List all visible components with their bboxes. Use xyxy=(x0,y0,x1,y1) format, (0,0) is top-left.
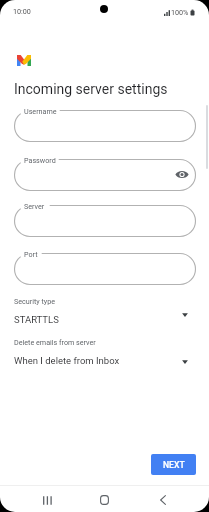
staticText: Security type xyxy=(14,297,56,305)
button[interactable]: Delete emails from server xyxy=(14,338,196,368)
staticText: 10:00 xyxy=(13,7,31,15)
button[interactable]: Show password xyxy=(173,165,191,183)
staticText: Server xyxy=(24,202,45,210)
staticText: Incoming server settings xyxy=(14,81,168,97)
staticText: Username xyxy=(24,107,57,115)
staticText: Port xyxy=(24,250,38,258)
staticText: 100% xyxy=(171,8,189,16)
staticText: STARTTLS xyxy=(14,314,59,325)
button[interactable]: NEXT xyxy=(151,454,196,475)
staticText: NEXT xyxy=(163,460,185,470)
button[interactable]: Password xyxy=(14,159,196,191)
button[interactable]: Recent apps xyxy=(33,486,61,512)
staticText: Delete emails from server xyxy=(14,338,96,346)
button[interactable]: Username xyxy=(14,110,196,142)
button[interactable]: Home xyxy=(90,486,118,512)
staticText: When I delete from Inbox xyxy=(14,355,120,366)
button[interactable]: Server xyxy=(14,205,196,237)
button[interactable]: Back xyxy=(149,486,177,512)
staticText: Password xyxy=(24,156,56,164)
button[interactable]: Port xyxy=(14,253,196,285)
button[interactable]: Security type xyxy=(14,297,196,327)
